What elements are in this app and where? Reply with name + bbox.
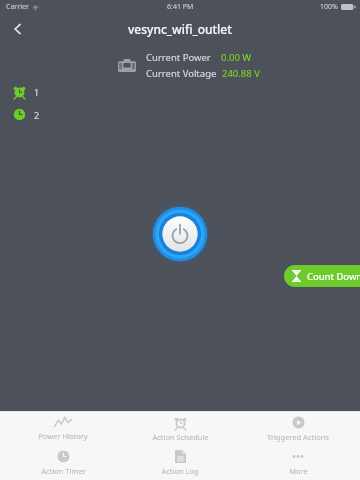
staticText: Triggered Actions [267,432,329,442]
staticText: 6:41 PM [167,2,194,12]
staticText: Current Power [146,51,211,64]
staticText: Carrier [6,2,29,12]
staticText: Count Down [307,270,360,283]
button[interactable]: More [243,446,353,480]
button[interactable]: 2 [11,106,42,123]
staticText: Action Schedule [152,432,209,442]
button[interactable]: Action Log [125,446,235,480]
button[interactable]: Action Timer [8,446,118,480]
button[interactable]: Power toggle [146,200,214,268]
staticText: Action Log [161,466,199,476]
staticText: vesync_wifi_outlet [128,21,232,37]
staticText: 0.00 W [221,51,252,64]
staticText: Action Timer [41,466,86,476]
button[interactable]: Power History [8,412,118,446]
button[interactable]: Action Schedule [125,412,235,446]
staticText: More [289,466,308,476]
staticText: 240.88 V [222,67,260,80]
staticText: Power History [38,431,88,441]
button[interactable]: Count Down [284,265,360,287]
staticText: Current Voltage [146,67,217,80]
staticText: 100% [320,2,338,12]
staticText: 1 [34,86,40,98]
button[interactable]: 1 [11,83,42,100]
button[interactable]: Back [4,15,32,43]
staticText: 2 [34,109,40,121]
button[interactable]: Triggered Actions [243,412,353,446]
